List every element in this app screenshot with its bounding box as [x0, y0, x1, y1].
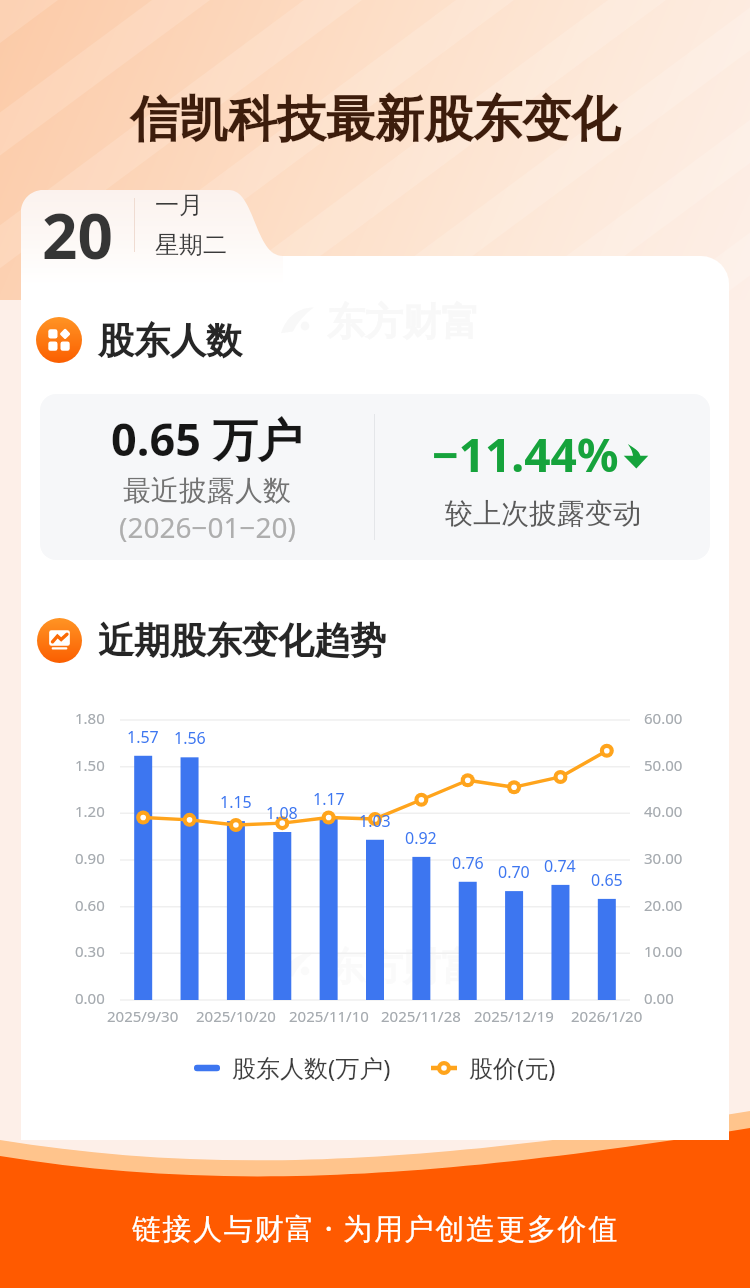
staticText: 60.00: [644, 708, 683, 728]
staticText: 1.80: [75, 708, 105, 728]
staticText: 股价(元): [469, 1051, 556, 1084]
button[interactable]: 近期股东变化趋势: [37, 618, 386, 663]
staticText: 近期股东变化趋势: [98, 618, 386, 663]
staticText: 2025/9/30: [107, 1006, 179, 1026]
staticText: (2026−01−20): [119, 508, 296, 546]
staticText: 0.00: [75, 988, 105, 1008]
staticText: 0.60: [75, 895, 105, 915]
staticText: 0.90: [75, 848, 105, 868]
staticText: 股东人数: [98, 318, 242, 363]
staticText: 一月: [155, 190, 203, 220]
staticText: 链接人与财富 · 为用户创造更多价值: [132, 1208, 619, 1248]
staticText: 0.00: [644, 988, 674, 1008]
staticText: 星期二: [155, 230, 227, 260]
staticText: 2026/1/20: [571, 1006, 643, 1026]
staticText: 1.03: [359, 810, 391, 832]
staticText: 1.56: [174, 727, 206, 749]
button[interactable]: 20: [21, 190, 321, 285]
staticText: 0.76: [452, 852, 484, 874]
staticText: 2025/12/19: [474, 1006, 554, 1026]
staticText: 20: [42, 193, 113, 263]
staticText: 最近披露人数: [123, 473, 291, 508]
staticText: −11.44%: [432, 423, 619, 486]
staticText: 2025/10/20: [196, 1006, 276, 1026]
staticText: 0.65: [591, 869, 623, 891]
staticText: 0.92: [405, 827, 437, 849]
staticText: 信凯科技最新股东变化: [130, 89, 620, 151]
staticText: 40.00: [644, 801, 683, 821]
staticText: 东方财富: [327, 943, 479, 991]
staticText: 较上次披露变动: [445, 496, 641, 531]
staticText: 20.00: [644, 895, 683, 915]
staticText: 股东人数(万户): [232, 1051, 391, 1084]
staticText: 30.00: [644, 848, 683, 868]
staticText: 0.74: [544, 855, 576, 877]
staticText: 2025/11/28: [381, 1006, 461, 1026]
staticText: 50.00: [644, 755, 683, 775]
other: 近期股东变化趋势: [37, 618, 82, 663]
staticText: 10.00: [644, 941, 683, 961]
staticText: 1.50: [75, 755, 105, 775]
staticText: 1.57: [127, 726, 159, 748]
staticText: 0.65 万户: [111, 408, 303, 469]
staticText: 1.08: [266, 802, 298, 824]
staticText: 1.17: [313, 788, 345, 810]
staticText: 0.70: [498, 861, 530, 883]
staticText: 东方财富: [327, 298, 479, 346]
staticText: 0.30: [75, 941, 105, 961]
button[interactable]: 股东人数: [36, 317, 242, 363]
staticText: 1.20: [75, 801, 105, 821]
other: 股东人数: [36, 317, 82, 363]
staticText: 2025/11/10: [289, 1006, 369, 1026]
staticText: 1.15: [220, 791, 252, 813]
